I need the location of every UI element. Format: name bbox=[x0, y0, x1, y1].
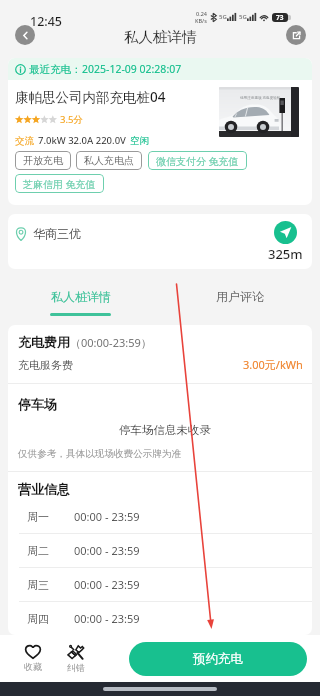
staticText: 周四 bbox=[27, 612, 49, 626]
staticText: 00:00 - 23:59 bbox=[74, 543, 140, 558]
staticText: 营业信息 bbox=[18, 481, 70, 497]
staticText: 00:00 - 23:59 bbox=[74, 577, 140, 592]
button[interactable]: 华商三优 bbox=[8, 214, 312, 269]
staticText: 纠错 bbox=[67, 662, 85, 673]
button[interactable]: Back bbox=[15, 25, 35, 45]
staticText: 私人桩详情 bbox=[124, 28, 197, 46]
staticText: 7.0kW 32.0A 220.0V bbox=[38, 134, 126, 147]
staticText: 空闲 bbox=[130, 135, 149, 147]
staticText: 华商三优 bbox=[33, 226, 81, 241]
staticText: 周一 bbox=[27, 510, 49, 524]
button[interactable]: 收藏 bbox=[11, 645, 54, 672]
staticText: 用户评论 bbox=[216, 289, 264, 304]
staticText: 康帕思公司内部充电桩04 bbox=[15, 88, 166, 106]
staticText: 3.5分 bbox=[60, 113, 83, 126]
staticText: 73 bbox=[276, 13, 284, 22]
staticText: 周二 bbox=[27, 544, 49, 558]
staticText: 00:00 - 23:59 bbox=[74, 509, 140, 524]
button[interactable]: 预约充电 bbox=[129, 642, 307, 676]
staticText: 芝麻信用 免充值 bbox=[23, 177, 96, 191]
button[interactable]: 用户评论 bbox=[160, 269, 320, 325]
staticText: 私人桩详情 bbox=[51, 289, 111, 304]
staticText: 5G bbox=[219, 13, 227, 21]
other: Navigate bbox=[274, 221, 297, 244]
staticText: 2025-12-09 02:28:07 bbox=[82, 62, 182, 76]
staticText: 5G bbox=[239, 13, 247, 21]
staticText: 使用注意事项 充电更轻松 bbox=[240, 95, 281, 100]
staticText: （00:00-23:59） bbox=[70, 335, 152, 350]
staticText: KB/s bbox=[195, 17, 207, 24]
staticText: 0.24 bbox=[196, 10, 207, 17]
staticText: 停车场信息未收录 bbox=[119, 423, 211, 437]
staticText: 停车场 bbox=[18, 396, 57, 412]
staticText: 00:00 - 23:59 bbox=[74, 611, 140, 626]
button[interactable]: 私人桩详情 bbox=[0, 269, 160, 325]
staticText: 仅供参考，具体以现场收费公示牌为准 bbox=[18, 448, 182, 460]
staticText: 收藏 bbox=[24, 661, 42, 672]
staticText: 交流 bbox=[15, 135, 34, 147]
staticText: 3.00元/kWh bbox=[243, 357, 303, 372]
staticText: 周三 bbox=[27, 578, 49, 592]
button[interactable]: 纠错 bbox=[54, 645, 97, 673]
staticText: 最近充电： bbox=[29, 63, 82, 76]
staticText: 充电费用 bbox=[18, 334, 70, 350]
staticText: 预约充电 bbox=[193, 651, 243, 667]
staticText: 325m bbox=[268, 245, 303, 263]
staticText: 微信支付分 免充值 bbox=[156, 154, 239, 168]
button[interactable]: Share bbox=[286, 25, 306, 45]
staticText: 私人充电点 bbox=[84, 154, 134, 167]
staticText: 充电服务费 bbox=[18, 358, 73, 372]
staticText: 开放充电 bbox=[23, 154, 63, 167]
staticText: 12:45 bbox=[30, 13, 63, 30]
